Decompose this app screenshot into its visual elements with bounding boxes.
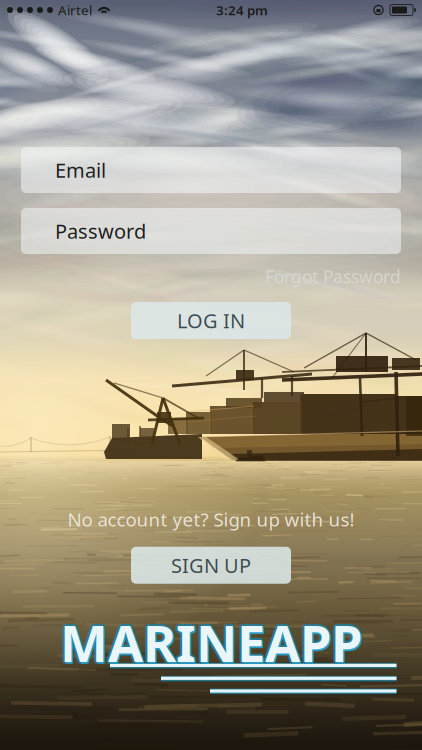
button[interactable]: Forgot Password: [265, 265, 401, 288]
staticText: MARINEAPP: [62, 610, 364, 678]
staticText: 3:24 pm: [216, 1, 268, 19]
button[interactable]: SIGN UP: [131, 547, 291, 584]
staticText: No account yet? Sign up with us!: [67, 507, 354, 532]
button[interactable]: Email: [21, 147, 401, 193]
staticText: MARINEAPP: [60, 611, 362, 678]
staticText: Airtel: [58, 1, 92, 19]
staticText: SIGN UP: [171, 552, 251, 578]
button[interactable]: LOG IN: [131, 302, 291, 339]
staticText: Password: [55, 218, 146, 244]
staticText: LOG IN: [177, 307, 245, 334]
staticText: MARINEAPP: [58, 609, 360, 676]
staticText: MARINEAPP: [60, 607, 362, 674]
staticText: MARINEAPP: [58, 607, 360, 674]
staticText: MARINEAPP: [58, 610, 360, 677]
staticText: MARINEAPP: [61, 607, 363, 674]
staticText: MARINEAPP: [62, 609, 364, 676]
button[interactable]: Password: [21, 208, 401, 254]
staticText: Email: [55, 157, 106, 183]
staticText: MARINEAPP: [61, 610, 363, 677]
staticText: Forgot Password: [265, 265, 401, 288]
staticText: MARINEAPP: [60, 609, 362, 676]
